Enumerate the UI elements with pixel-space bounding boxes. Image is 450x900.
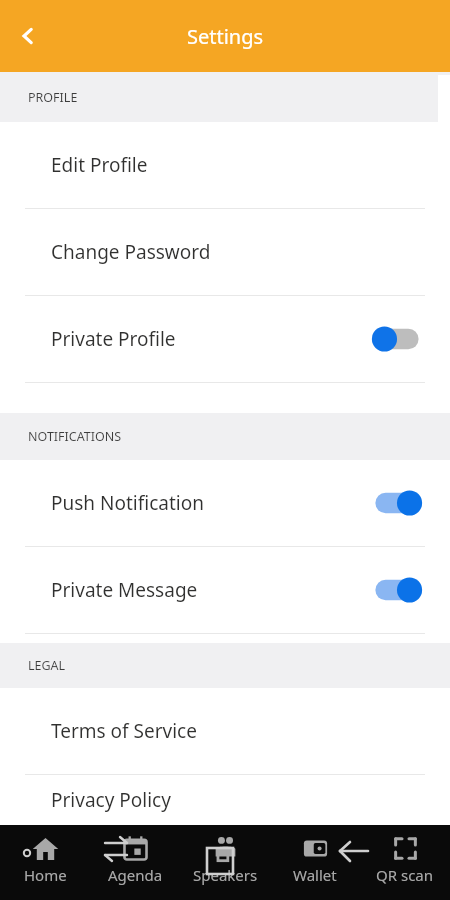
staticText: Privacy Policy — [51, 787, 450, 813]
staticText: Speakers — [193, 865, 258, 885]
staticText: LEGAL — [28, 657, 66, 674]
button[interactable]: Terms of Service — [0, 688, 450, 774]
button[interactable]: Privacy Policy — [0, 775, 450, 825]
button[interactable]: Private Message — [0, 547, 450, 633]
button[interactable]: Off — [370, 322, 424, 356]
staticText: Settings — [187, 23, 264, 50]
staticText: Terms of Service — [51, 718, 450, 744]
staticText: Edit Profile — [51, 152, 450, 178]
button[interactable]: QR scan — [360, 825, 450, 900]
staticText: Private Message — [51, 577, 370, 603]
staticText: Change Password — [51, 239, 450, 265]
staticText: Agenda — [108, 865, 163, 885]
button[interactable]: Home — [0, 825, 90, 900]
button[interactable]: Push Notification — [0, 460, 450, 546]
button[interactable]: Wallet — [270, 825, 360, 900]
button[interactable]: Edit Profile — [0, 122, 450, 208]
button[interactable]: Back — [6, 14, 50, 58]
staticText: NOTIFICATIONS — [28, 428, 122, 445]
button[interactable]: Private Profile — [0, 296, 450, 382]
button[interactable]: On — [370, 573, 424, 607]
button[interactable]: Speakers — [180, 825, 270, 900]
staticText: Private Profile — [51, 326, 370, 352]
staticText: PROFILE — [28, 89, 78, 106]
staticText: Wallet — [293, 865, 337, 885]
button[interactable]: Change Password — [0, 209, 450, 295]
button[interactable]: On — [370, 486, 424, 520]
staticText: QR scan — [376, 865, 434, 885]
button[interactable]: Agenda — [90, 825, 180, 900]
staticText: Push Notification — [51, 490, 370, 516]
staticText: Home — [24, 865, 67, 885]
